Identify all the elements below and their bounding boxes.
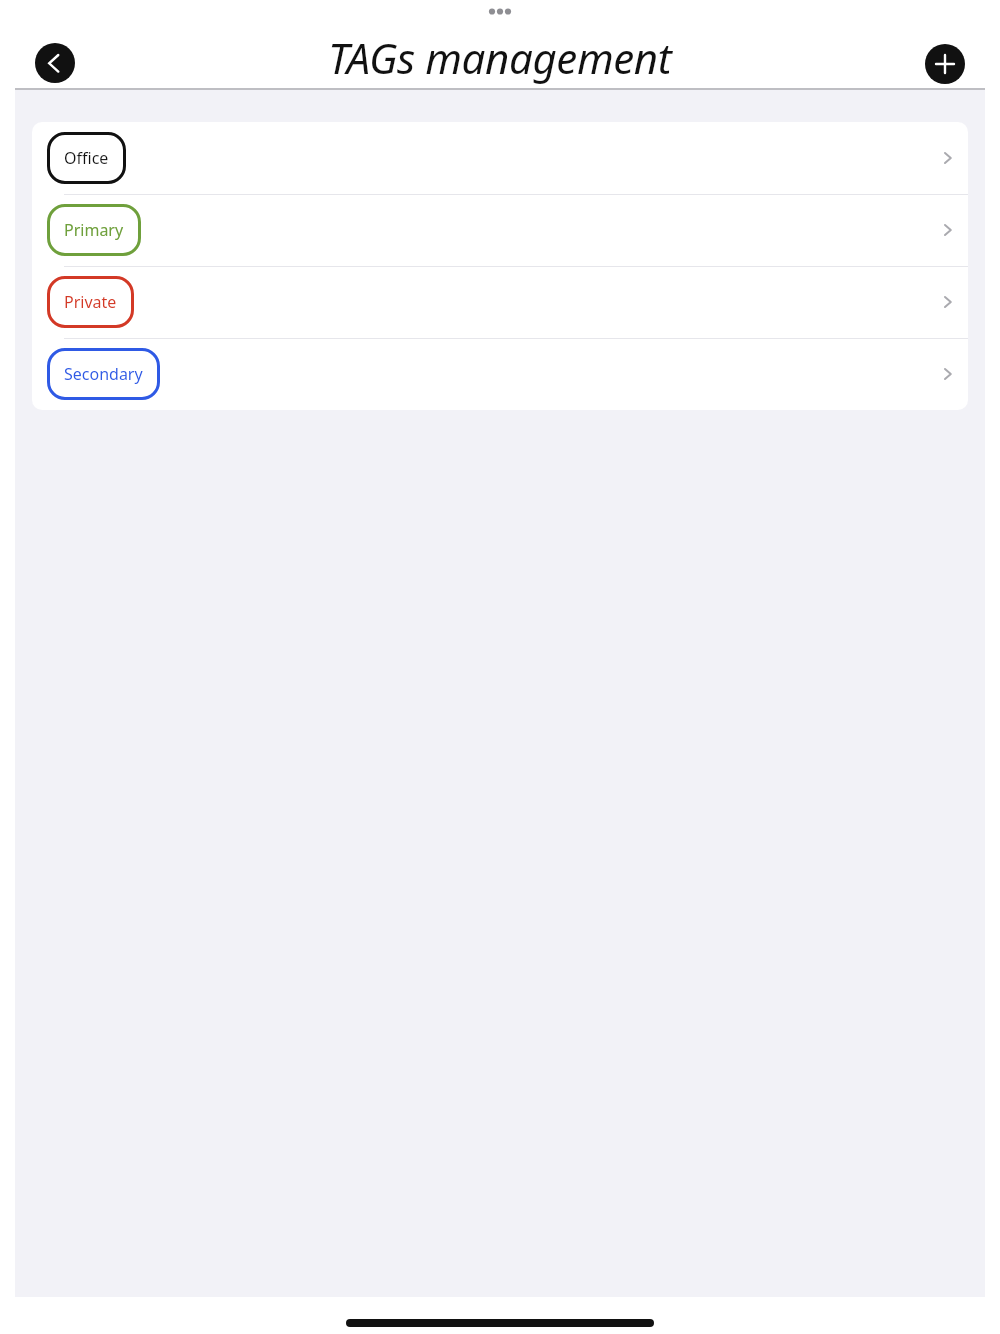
staticText: TAGs management	[328, 29, 672, 86]
button[interactable]: Private	[32, 266, 968, 338]
button[interactable]	[35, 43, 75, 83]
button[interactable]: Office	[32, 122, 968, 194]
button[interactable]: Primary	[32, 194, 968, 266]
staticText: Primary	[64, 219, 124, 241]
button[interactable]: Secondary	[32, 338, 968, 410]
staticText: Private	[64, 291, 117, 313]
staticText: Secondary	[64, 363, 143, 385]
staticText: Office	[64, 147, 109, 169]
button[interactable]	[925, 44, 965, 84]
